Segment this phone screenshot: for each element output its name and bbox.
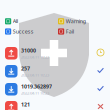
- button[interactable]: 31000: [5, 47, 75, 59]
- staticText: 31000: [21, 47, 36, 54]
- staticText: Fail: [66, 28, 74, 35]
- staticText: Warning: [66, 18, 86, 25]
- staticText: 257: [21, 65, 30, 72]
- button[interactable]: All: [5, 18, 39, 25]
- staticText: Success: [13, 28, 34, 35]
- staticText: 2022-04-11 10:23: [21, 90, 49, 96]
- button[interactable]: Fail: [58, 28, 92, 35]
- staticText: All: [13, 18, 18, 25]
- staticText: 2022-04-11 10:23: [21, 72, 49, 78]
- button[interactable]: 121: [5, 101, 75, 110]
- staticText: 2022-04-11 10:23: [21, 54, 49, 60]
- button[interactable]: 257: [5, 65, 75, 77]
- button[interactable]: Warning: [58, 18, 92, 25]
- staticText: 121: [21, 101, 30, 108]
- staticText: 1019.362897: [21, 83, 52, 90]
- button[interactable]: 1019.362897: [5, 83, 75, 95]
- button[interactable]: Success: [5, 28, 39, 35]
